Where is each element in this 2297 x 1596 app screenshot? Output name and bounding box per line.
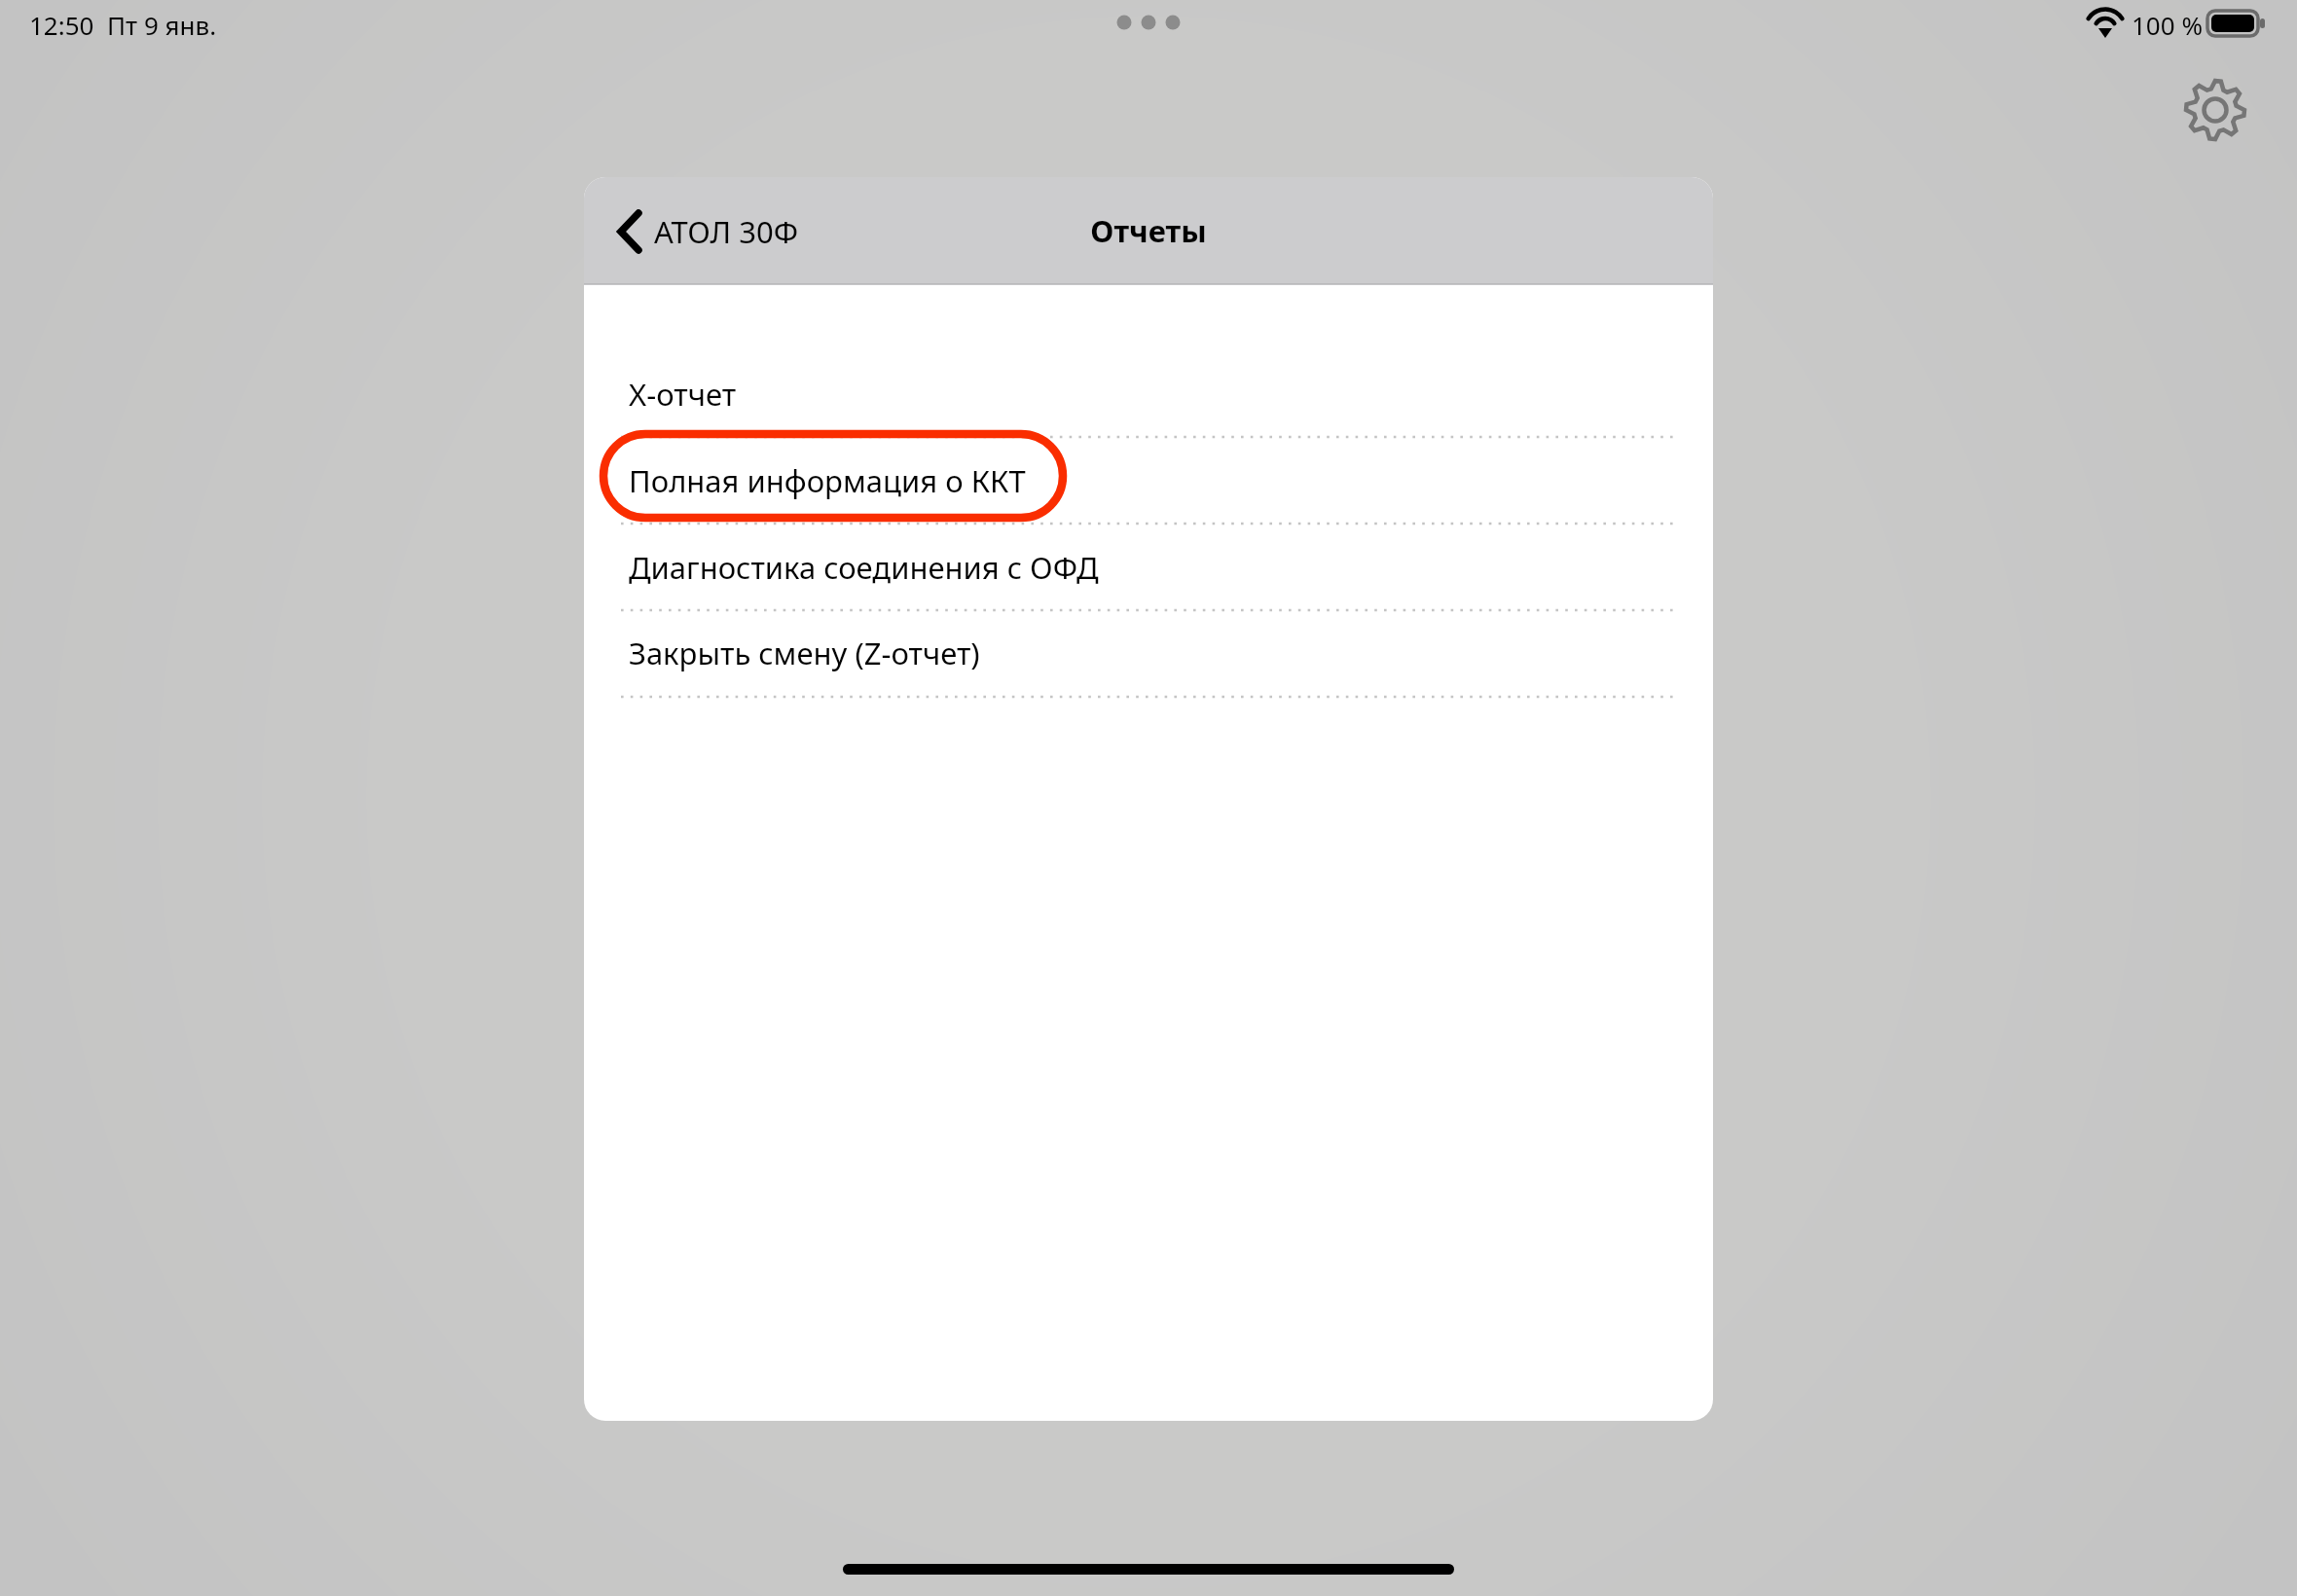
staticText: X-отчет (629, 374, 737, 415)
staticText: Пт 9 янв. (107, 8, 217, 42)
button[interactable]: АТОЛ 30Ф (600, 199, 823, 264)
button[interactable]: Закрыть смену (Z-отчет) (621, 610, 1674, 696)
button[interactable]: Полная информация о ККТ (621, 438, 1674, 524)
staticText: 100 % (2132, 8, 2203, 42)
button[interactable]: Диагностика соединения с ОФД (621, 525, 1674, 610)
staticText: Диагностика соединения с ОФД (629, 547, 1099, 588)
button[interactable]: Settings (2169, 63, 2262, 157)
staticText: Полная информация о ККТ (629, 460, 1026, 501)
staticText: АТОЛ 30Ф (654, 211, 798, 252)
staticText: Закрыть смену (Z-отчет) (629, 633, 980, 673)
button[interactable]: X-отчет (621, 351, 1674, 437)
staticText: Отчеты (1090, 210, 1207, 251)
staticText: 12:50 (29, 8, 94, 42)
